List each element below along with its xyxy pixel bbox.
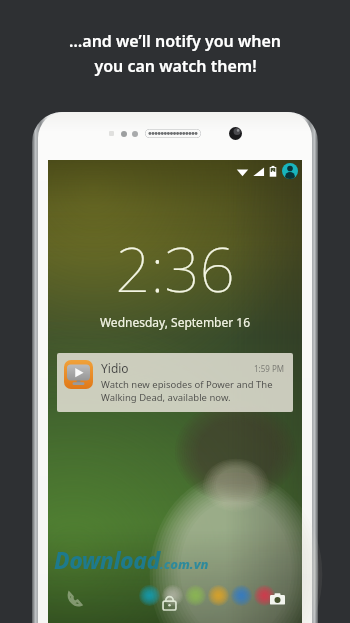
button[interactable]: Unlock — [155, 588, 183, 616]
staticText: Wednesday, September 16 — [48, 314, 302, 330]
staticText: Walking Dead, available now. — [101, 391, 231, 404]
button[interactable]: Yidio — [57, 353, 293, 412]
staticText: Watch new episodes of Power and The — [101, 378, 273, 391]
staticText: Yidio — [101, 360, 254, 376]
staticText: 1:59 PM — [254, 363, 285, 374]
staticText: .com.vn — [160, 555, 209, 573]
staticText: …and we’ll notify you when — [69, 30, 281, 52]
staticText: 2:36 — [48, 226, 302, 310]
button[interactable]: Camera — [262, 584, 292, 614]
button[interactable]: User profile — [282, 163, 298, 179]
staticText: you can watch them! — [94, 55, 257, 77]
button[interactable]: Phone — [60, 584, 90, 614]
staticText: Download — [54, 544, 160, 575]
